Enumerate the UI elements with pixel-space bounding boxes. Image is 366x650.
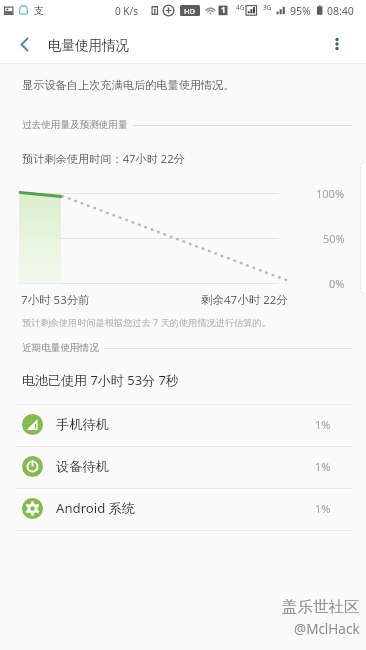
button[interactable]: Android 系统: [0, 489, 366, 530]
staticText: @MclHack: [294, 620, 360, 638]
staticText: 3G: [263, 3, 272, 12]
staticText: 预计剩余使用时间是根据您过去 7 天的使用情况进行估算的。: [22, 316, 271, 329]
button[interactable]: Back: [3, 23, 45, 65]
staticText: 08:40: [327, 4, 354, 18]
staticText: 7小时 53分前: [21, 292, 90, 308]
staticText: 支: [34, 4, 44, 17]
staticText: 0 K/s: [115, 4, 139, 18]
button[interactable]: More options: [316, 23, 358, 65]
staticText: 手机待机: [56, 416, 109, 433]
staticText: 过去使用量及预测使用量: [22, 119, 128, 131]
button[interactable]: 设备待机: [0, 447, 366, 488]
staticText: 95%: [290, 4, 311, 18]
staticText: 盖乐世社区: [282, 597, 360, 617]
button[interactable]: 手机待机: [0, 405, 366, 446]
staticText: 显示设备自上次充满电后的电量使用情况。: [22, 78, 235, 92]
staticText: 电量使用情况: [48, 37, 129, 54]
staticText: 0%: [329, 276, 345, 291]
staticText: 1%: [315, 501, 331, 516]
staticText: 1%: [315, 459, 331, 474]
staticText: 4G: [236, 3, 245, 12]
staticText: 设备待机: [56, 458, 109, 475]
staticText: Android 系统: [56, 499, 136, 517]
staticText: 预计剩余使用时间：47小时 22分: [22, 151, 185, 166]
staticText: 近期电量使用情况: [22, 342, 99, 354]
staticText: HD: [184, 6, 196, 16]
staticText: 1: [221, 4, 226, 15]
staticText: 剩余47小时 22分: [201, 292, 288, 308]
staticText: 1%: [315, 417, 331, 432]
staticText: 电池已使用 7小时 53分 7秒: [22, 371, 179, 389]
staticText: 50%: [323, 231, 345, 246]
staticText: 100%: [316, 186, 345, 201]
